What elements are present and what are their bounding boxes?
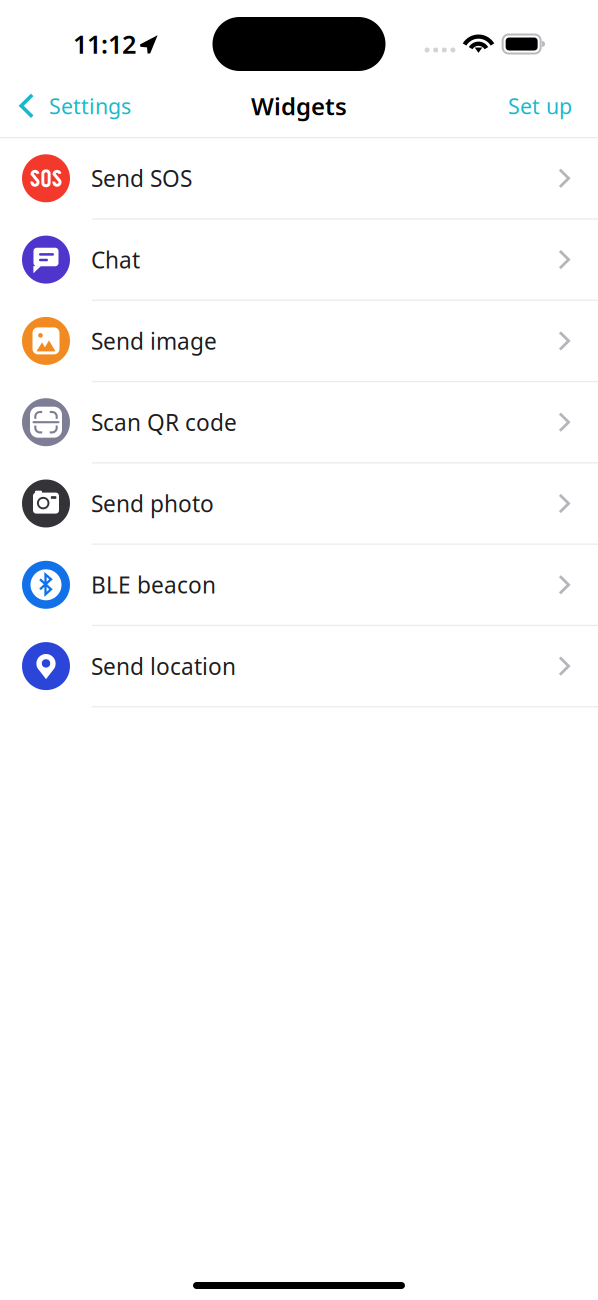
staticText: 11:12 <box>73 27 136 61</box>
staticText: Widgets <box>251 90 347 122</box>
staticText: Chat <box>91 244 140 275</box>
button[interactable]: Chat <box>0 220 598 301</box>
staticText: Send location <box>91 651 236 681</box>
staticText: BLE beacon <box>91 570 216 600</box>
staticText: Settings <box>49 92 131 120</box>
staticText: Scan QR code <box>91 407 237 437</box>
button[interactable]: Send photo <box>0 463 598 545</box>
staticText: Send image <box>91 326 217 356</box>
button[interactable]: Scan QR code <box>0 382 598 463</box>
button[interactable]: Send location <box>0 626 598 707</box>
button[interactable]: Send image <box>0 301 598 382</box>
staticText: Send photo <box>91 488 214 518</box>
staticText: Set up <box>508 92 572 120</box>
button[interactable]: Settings <box>0 78 143 134</box>
button[interactable]: Send SOS <box>0 138 598 220</box>
staticText: Send SOS <box>91 163 192 193</box>
button[interactable]: Set up <box>496 78 598 134</box>
button[interactable]: BLE beacon <box>0 545 598 626</box>
